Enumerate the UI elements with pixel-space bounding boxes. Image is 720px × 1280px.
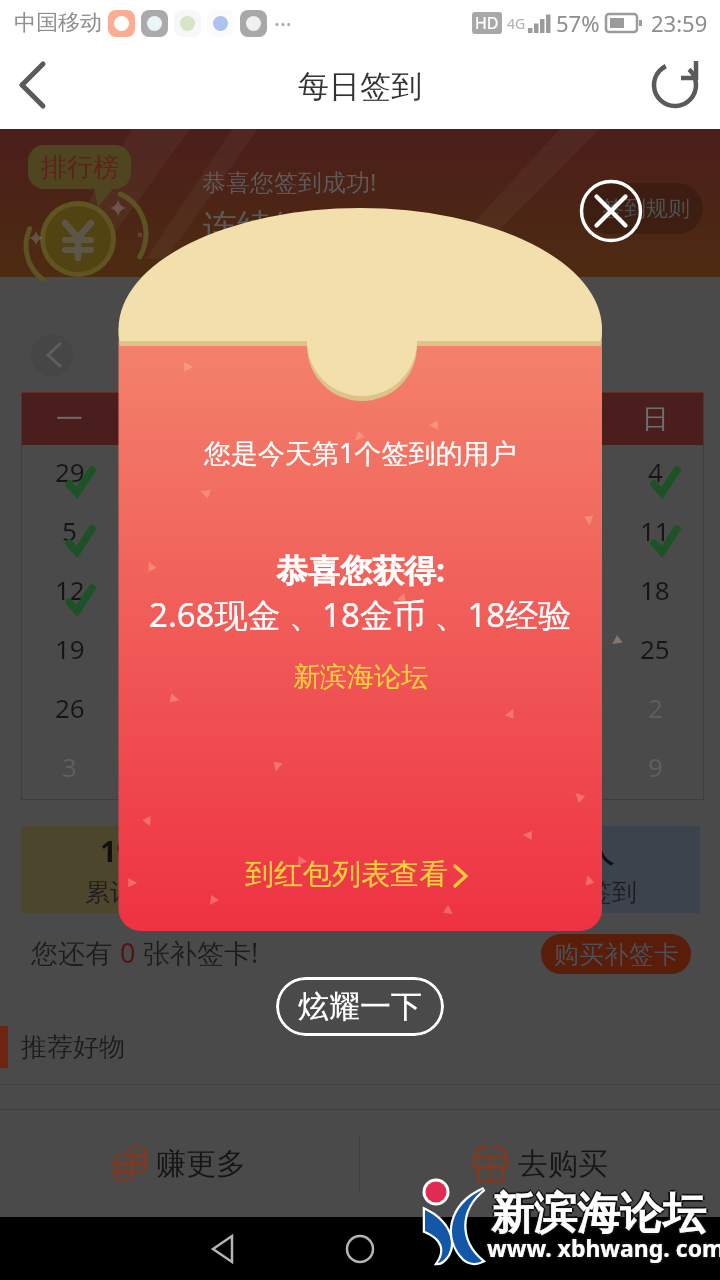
staticText: www. xbhwang. com	[489, 1232, 720, 1263]
button[interactable]: Back	[0, 50, 70, 120]
button[interactable]: 23	[410, 622, 508, 681]
staticText: 9	[648, 749, 663, 784]
button[interactable]: 签到规则	[583, 183, 703, 234]
button[interactable]: 去购买	[360, 1110, 720, 1217]
staticText: 15	[346, 572, 376, 607]
button[interactable]: 27	[118, 681, 215, 740]
staticText: 签到规则	[602, 195, 690, 223]
button[interactable]: 29	[21, 445, 118, 504]
button[interactable]: 4	[118, 740, 215, 799]
button[interactable]: 赚更多	[0, 1110, 359, 1217]
button[interactable]: Close	[578, 178, 644, 244]
button[interactable]: 14	[215, 563, 312, 622]
staticText: 中国移动	[14, 9, 102, 37]
button[interactable]: 3	[21, 740, 118, 799]
staticText: 连续签到	[311, 877, 411, 908]
button[interactable]: 26	[21, 681, 118, 740]
staticText: 4G	[507, 14, 526, 33]
staticText: 每日签到	[298, 67, 422, 106]
staticText: 去购买	[518, 1145, 608, 1183]
staticText: 1	[354, 454, 369, 489]
button[interactable]: 1 天	[248, 826, 474, 913]
staticText: 19	[55, 631, 85, 666]
button[interactable]: 1	[508, 681, 606, 740]
button[interactable]: 8	[508, 740, 606, 799]
button[interactable]: 24	[508, 622, 606, 681]
staticText: 17	[542, 572, 572, 607]
button[interactable]: 20	[118, 622, 215, 681]
button[interactable]: 5	[21, 504, 118, 563]
staticText: 4	[648, 454, 663, 489]
button[interactable]: Refresh	[641, 50, 711, 120]
button[interactable]: 6	[118, 504, 215, 563]
button[interactable]: 10	[508, 504, 606, 563]
staticText: 新滨海论坛	[491, 1189, 706, 1243]
button[interactable]: 炫耀一下	[276, 977, 444, 1036]
staticText: 新滨海论坛	[493, 1187, 708, 1241]
button[interactable]: 到红包列表查看	[239, 852, 482, 897]
staticText: 新滨海论坛	[491, 1185, 706, 1239]
button[interactable]: 29	[312, 681, 410, 740]
staticText: 1 天	[334, 831, 388, 871]
button[interactable]: 7	[215, 504, 312, 563]
button[interactable]: 25	[606, 622, 704, 681]
staticText: 赚更多	[156, 1145, 246, 1183]
button[interactable]: 18	[606, 563, 704, 622]
staticText: 2	[648, 690, 663, 725]
staticText: www. xbhwang. com	[487, 1230, 720, 1261]
staticText: 推荐好物	[21, 1031, 125, 1064]
button[interactable]: 9	[410, 504, 508, 563]
button[interactable]: 15	[312, 563, 410, 622]
button[interactable]: 4	[606, 445, 704, 504]
staticText: 2	[452, 454, 467, 489]
button[interactable]: 1	[312, 445, 410, 504]
button[interactable]: 28	[215, 681, 312, 740]
button[interactable]: 购买补签卡	[541, 934, 691, 974]
button[interactable]: 30	[410, 681, 508, 740]
button[interactable]: 21	[215, 622, 312, 681]
button[interactable]: 11	[606, 504, 704, 563]
staticText: HD	[475, 12, 499, 34]
button[interactable]: 排行榜	[28, 145, 131, 189]
button[interactable]: 22	[312, 622, 410, 681]
staticText: 13	[152, 572, 182, 607]
staticText: 14	[249, 572, 279, 607]
staticText: 恭喜您签到成功!	[202, 165, 377, 198]
button[interactable]: 17	[508, 563, 606, 622]
button[interactable]: 19	[21, 622, 118, 681]
staticText: 四	[348, 402, 375, 436]
button[interactable]: 9	[606, 740, 704, 799]
button[interactable]: 8	[312, 504, 410, 563]
button[interactable]: 12	[21, 563, 118, 622]
button[interactable]: Back	[180, 1217, 270, 1280]
button[interactable]: Home	[315, 1217, 405, 1280]
button[interactable]: 13	[118, 563, 215, 622]
button[interactable]: 30	[118, 445, 215, 504]
button[interactable]: 1 人	[474, 826, 700, 913]
button[interactable]: Previous month	[31, 334, 73, 376]
button[interactable]: 16	[410, 563, 508, 622]
button[interactable]: 2	[606, 681, 704, 740]
button[interactable]: 2	[410, 445, 508, 504]
button[interactable]: 3	[508, 445, 606, 504]
button[interactable]: 5	[215, 740, 312, 799]
staticText: 您是今天第1个签到的用户	[204, 434, 517, 471]
staticText: 0	[120, 934, 136, 971]
staticText: 26	[55, 690, 85, 725]
button[interactable]: 19 天	[21, 826, 248, 913]
staticText: 3	[62, 749, 77, 784]
button[interactable]: 31	[215, 445, 312, 504]
staticText: 57%	[556, 8, 600, 38]
